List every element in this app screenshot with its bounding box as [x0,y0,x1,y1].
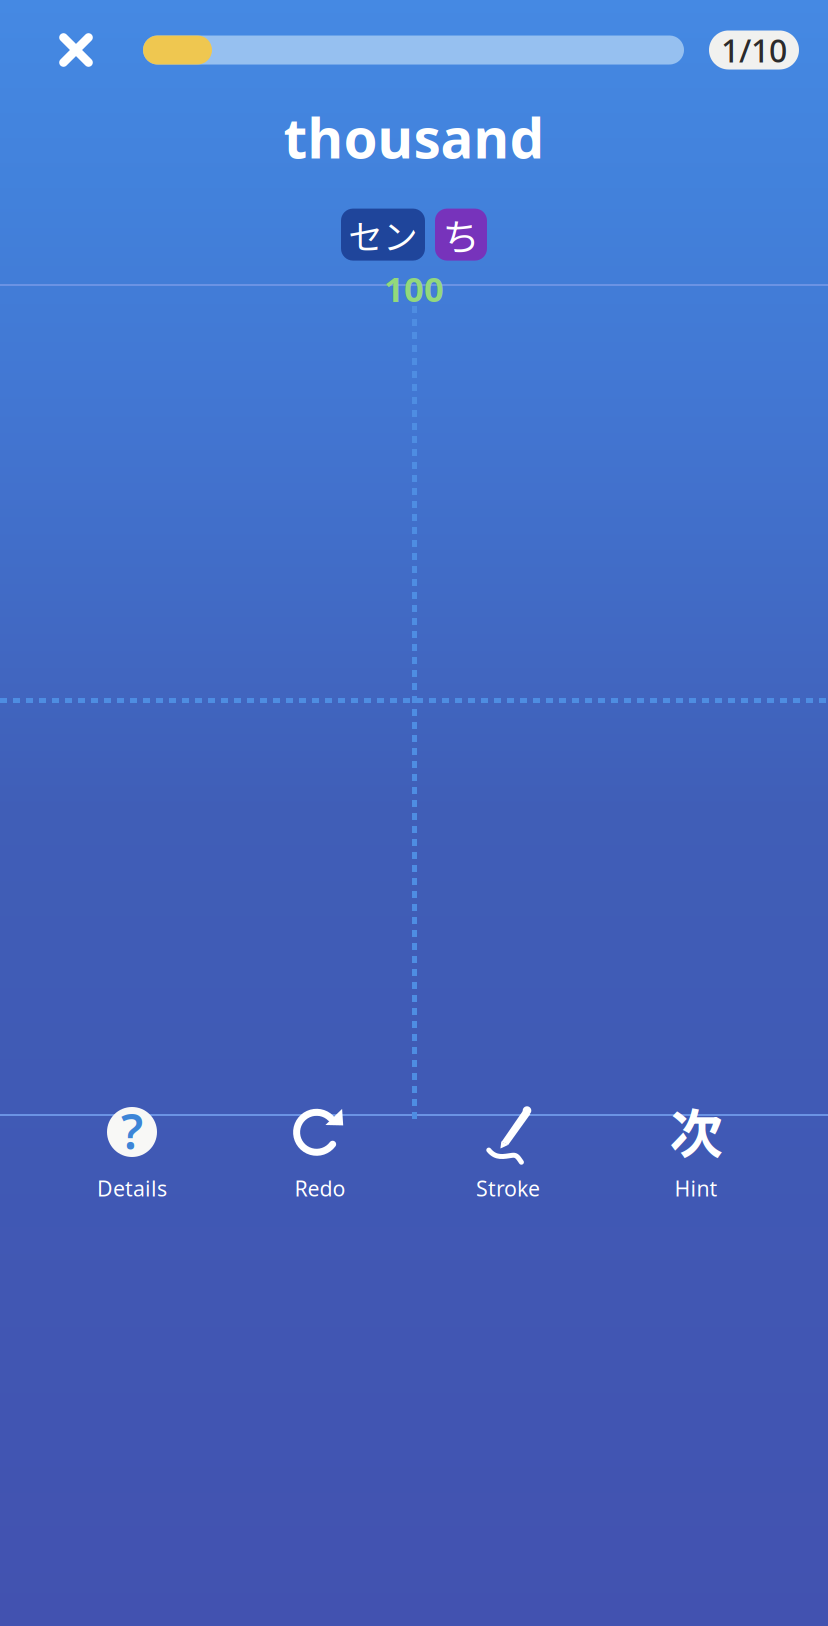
button[interactable]: Redo [226,1100,414,1216]
staticText: thousand [283,101,544,174]
button[interactable]: Stroke [414,1100,602,1216]
staticText: ? [121,1099,143,1163]
button[interactable]: 次 [602,1100,790,1216]
staticText: ち [442,208,479,262]
staticText: Details [97,1174,167,1202]
button[interactable]: 1/10 [709,30,799,69]
staticText: Stroke [476,1174,540,1202]
staticText: Hint [674,1174,717,1202]
staticText: 1/10 [721,29,787,71]
staticText: 100 [384,266,444,312]
staticText: 次 [669,1091,722,1169]
staticText: セン [348,209,418,260]
button[interactable]: Close [59,33,93,67]
button[interactable]: ? [38,1100,226,1216]
staticText: Redo [294,1174,345,1202]
